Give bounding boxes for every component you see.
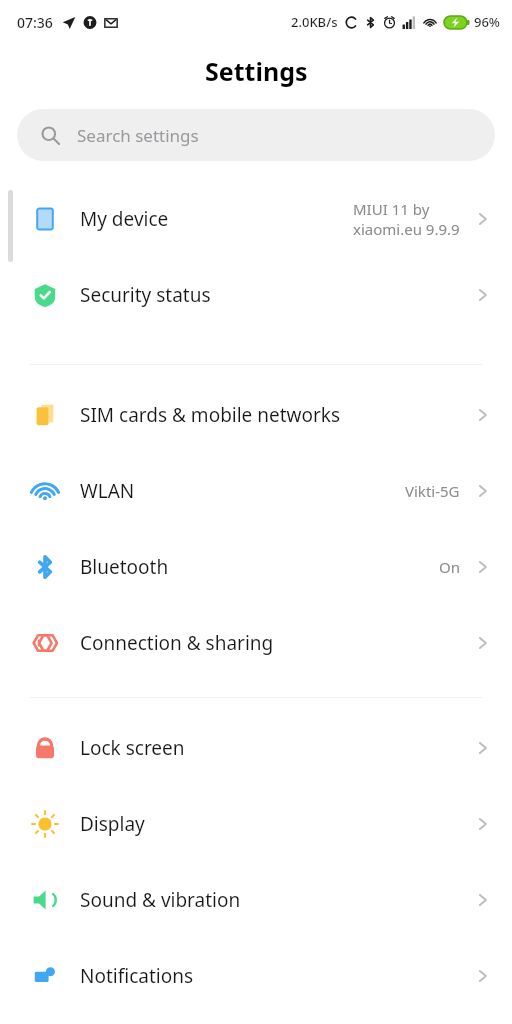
button[interactable]: WLAN: [0, 453, 512, 529]
staticText: 96%: [474, 13, 500, 31]
staticText: 2.0KB/s: [291, 13, 338, 31]
staticText: 07:36: [17, 13, 53, 32]
staticText: Bluetooth: [80, 554, 169, 580]
button[interactable]: My device: [0, 181, 512, 257]
button[interactable]: Connection & sharing: [0, 605, 512, 681]
staticText: Search settings: [77, 124, 199, 147]
staticText: Security status: [80, 282, 211, 308]
staticText: SIM cards & mobile networks: [80, 402, 341, 428]
button[interactable]: Bluetooth: [0, 529, 512, 605]
button[interactable]: Lock screen: [0, 710, 512, 786]
staticText: Settings: [205, 54, 308, 88]
staticText: On: [439, 557, 460, 577]
button[interactable]: Security status: [0, 257, 512, 333]
button[interactable]: Display: [0, 786, 512, 862]
staticText: Sound & vibration: [80, 887, 241, 913]
staticText: Lock screen: [80, 735, 185, 761]
button[interactable]: Sound & vibration: [0, 862, 512, 938]
staticText: MIUI 11 by xiaomi.eu 9.9.9: [353, 199, 460, 239]
button[interactable]: SIM cards & mobile networks: [0, 377, 512, 453]
staticText: WLAN: [80, 478, 135, 504]
staticText: My device: [80, 206, 169, 232]
staticText: Display: [80, 811, 145, 837]
staticText: Vikti-5G: [405, 481, 460, 501]
staticText: Notifications: [80, 963, 194, 989]
button[interactable]: Search settings: [17, 109, 495, 161]
staticText: Connection & sharing: [80, 630, 274, 656]
button[interactable]: Notifications: [0, 938, 512, 1014]
